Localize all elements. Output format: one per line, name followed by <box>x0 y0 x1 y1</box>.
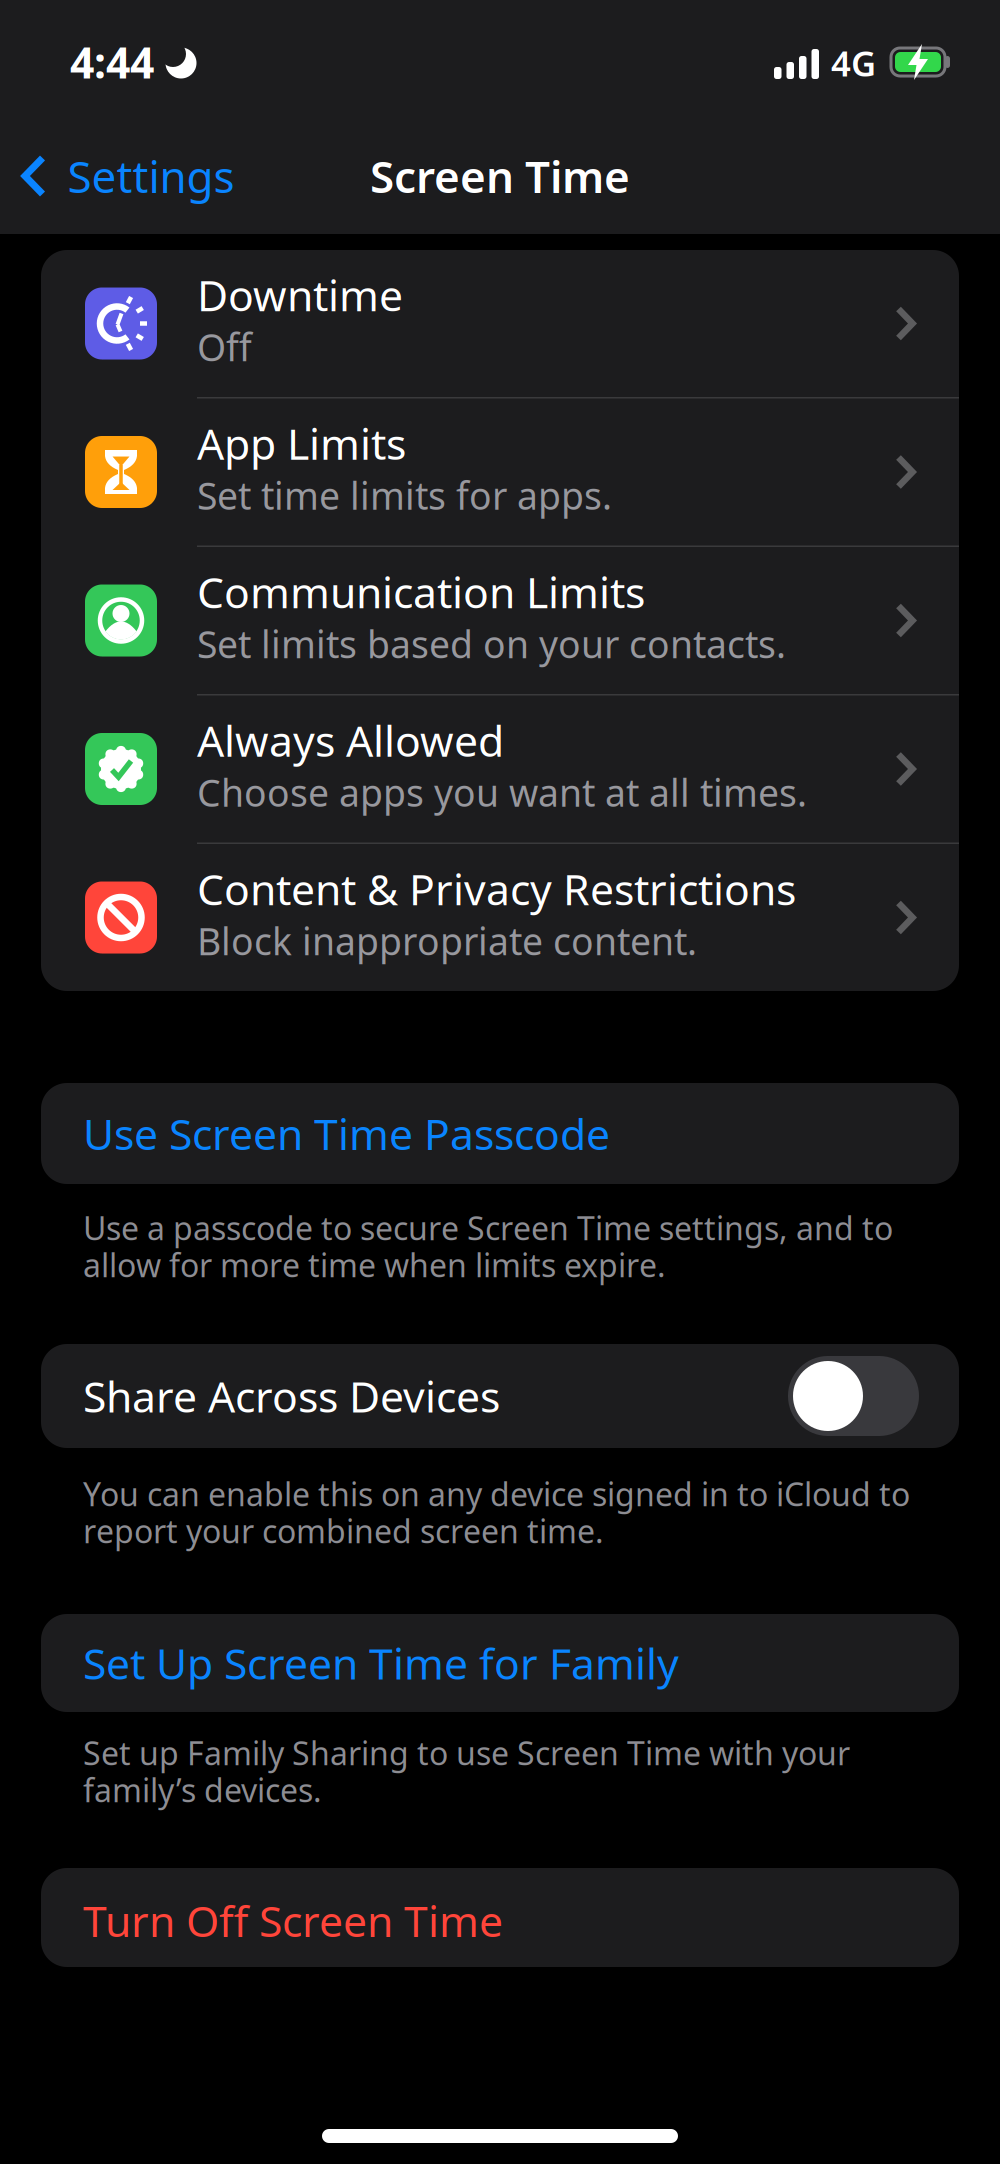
staticText: report your combined screen time. <box>83 1510 604 1552</box>
staticText: Use Screen Time Passcode <box>83 1105 610 1162</box>
staticText: Settings <box>67 147 234 205</box>
button[interactable]: Back <box>21 146 234 206</box>
staticText: Content & Privacy Restrictions <box>197 860 796 917</box>
staticText: Always Allowed <box>197 712 504 769</box>
staticText: Block inappropriate content. <box>197 916 697 966</box>
staticText: Set Up Screen Time for Family <box>83 1635 679 1691</box>
staticText: Use a passcode to secure Screen Time set… <box>83 1207 893 1249</box>
button[interactable]: Always Allowed <box>41 695 959 842</box>
staticText: You can enable this on any device signed… <box>83 1473 910 1515</box>
button[interactable]: Set Up Screen Time for Family <box>41 1614 959 1712</box>
button[interactable]: App Limits <box>41 398 959 545</box>
staticText: Choose apps you want at all times. <box>197 767 807 817</box>
button[interactable]: Use Screen Time Passcode <box>41 1083 959 1184</box>
button[interactable]: Share Across Devices <box>788 1356 919 1436</box>
staticText: Set time limits for apps. <box>197 470 612 520</box>
staticText: Share Across Devices <box>83 1368 500 1424</box>
staticText: Downtime <box>197 266 403 323</box>
staticText: Off <box>197 322 252 372</box>
staticText: 4G <box>831 40 876 86</box>
staticText: allow for more time when limits expire. <box>83 1244 666 1286</box>
staticText: Communication Limits <box>197 563 645 620</box>
staticText: Set up Family Sharing to use Screen Time… <box>83 1732 850 1774</box>
staticText: Turn Off Screen Time <box>83 1892 503 1949</box>
staticText: Screen Time <box>370 147 630 205</box>
button[interactable]: Turn Off Screen Time <box>41 1868 959 1967</box>
button[interactable]: Communication Limits <box>41 547 959 694</box>
staticText: family’s devices. <box>83 1769 322 1811</box>
staticText: Set limits based on your contacts. <box>197 619 786 669</box>
button[interactable]: Content & Privacy Restrictions <box>41 844 959 991</box>
staticText: App Limits <box>197 415 406 472</box>
button[interactable]: Downtime <box>41 250 959 397</box>
staticText: 4:44 <box>70 34 154 90</box>
